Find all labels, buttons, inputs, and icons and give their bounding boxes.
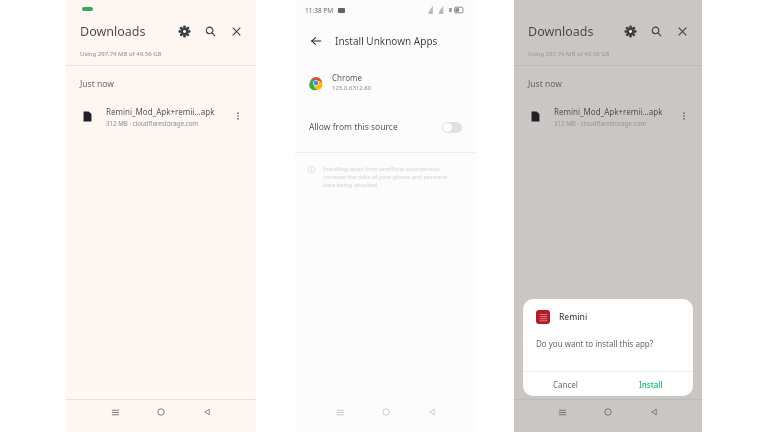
staticText: Allow from this source: [309, 121, 398, 133]
button[interactable]: More options: [230, 108, 246, 124]
button[interactable]: Back: [307, 32, 325, 50]
button[interactable]: Back: [409, 400, 455, 424]
staticText: Downloads: [528, 23, 594, 40]
staticText: Install: [639, 379, 663, 390]
button[interactable]: Back: [631, 400, 677, 424]
staticText: 11:38 PM: [305, 6, 334, 15]
button[interactable]: Search: [646, 21, 666, 41]
button[interactable]: Recents: [92, 400, 138, 424]
staticText: Cancel: [553, 379, 578, 390]
button[interactable]: Recents: [317, 400, 363, 424]
staticText: Remini_Mod_Apk+remii...apk: [554, 106, 663, 117]
staticText: Chrome: [332, 72, 362, 83]
button[interactable]: Home: [138, 400, 184, 424]
staticText: Remini_Mod_Apk+remii...apk: [106, 106, 215, 117]
button[interactable]: Back: [184, 400, 230, 424]
staticText: Remini: [559, 311, 588, 323]
button[interactable]: More options: [676, 108, 692, 124]
button[interactable]: Remini_Mod_Apk+remii...apk: [514, 100, 702, 132]
button[interactable]: Remini_Mod_Apk+remii...apk: [66, 100, 256, 132]
button[interactable]: Install: [608, 372, 693, 396]
button[interactable]: Chrome: [295, 72, 476, 92]
staticText: Installing apps from unofficial sources …: [323, 165, 460, 189]
button[interactable]: Home: [363, 400, 409, 424]
button[interactable]: Close: [226, 21, 246, 41]
button[interactable]: Settings: [174, 21, 194, 41]
staticText: 312 MB · cloudflarestorage.com: [554, 119, 647, 127]
staticText: Using 297.74 MB of 49.56 GB: [528, 50, 610, 58]
button[interactable]: Search: [200, 21, 220, 41]
staticText: Do you want to install this app?: [536, 338, 654, 349]
staticText: Install Unknown Apps: [335, 34, 438, 48]
staticText: Using 297.74 MB of 49.56 GB: [80, 50, 162, 58]
staticText: 123.0.6312.80: [332, 84, 372, 92]
staticText: Downloads: [80, 23, 146, 40]
button[interactable]: Allow from this source: [295, 114, 476, 140]
button[interactable]: Home: [585, 400, 631, 424]
staticText: Just now: [80, 78, 114, 90]
button[interactable]: Close: [672, 21, 692, 41]
staticText: Just now: [528, 78, 562, 90]
button[interactable]: Cancel: [523, 372, 608, 396]
button[interactable]: Recents: [539, 400, 585, 424]
button[interactable]: Settings: [620, 21, 640, 41]
staticText: 312 MB · cloudflarestorage.com: [106, 119, 199, 127]
